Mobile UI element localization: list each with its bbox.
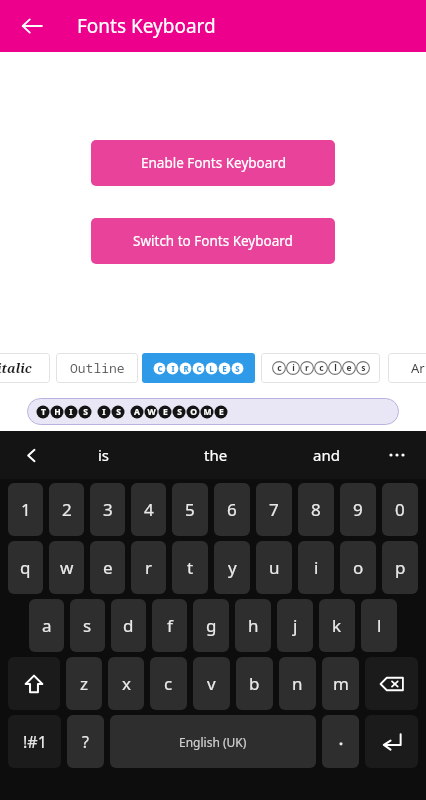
staticText: l [334,362,337,374]
button[interactable]: y [214,541,250,594]
button[interactable]: Backspace [365,657,418,710]
staticText: c [277,362,282,374]
button[interactable]: 3 [90,483,125,536]
button[interactable]: Enable Fonts Keyboard [91,140,335,186]
button[interactable]: s [70,599,105,652]
staticText: l [377,614,382,637]
staticText: b [249,672,260,695]
button[interactable]: f [152,599,187,652]
button[interactable]: d [111,599,146,652]
button[interactable]: is [48,431,160,479]
staticText: E [163,406,168,418]
button[interactable]: z [66,657,102,710]
staticText: g [206,614,217,637]
staticText: y [228,556,237,579]
button[interactable]: g [193,599,229,652]
button[interactable]: italic [0,353,50,383]
button[interactable]: More options [376,434,418,476]
staticText: h [248,614,259,637]
button[interactable]: a [29,599,64,652]
button[interactable]: m [322,657,359,710]
staticText: c [319,362,324,374]
button[interactable]: 7 [256,483,292,536]
button[interactable]: o [340,541,376,594]
button[interactable]: Switch to Fonts Keyboard [91,218,335,264]
staticText: r [305,362,309,374]
button[interactable]: i [298,541,334,594]
staticText: e [103,556,113,579]
button[interactable]: the [160,431,271,479]
button[interactable]: T [27,398,399,425]
button[interactable]: Enter [365,715,418,768]
button[interactable]: Period [322,715,359,768]
staticText: W [147,406,156,418]
button[interactable]: q [8,541,43,594]
button[interactable]: l [361,599,397,652]
staticText: u [269,556,280,579]
staticText: s [361,362,366,374]
staticText: v [207,672,216,695]
staticText: S [235,363,240,374]
button[interactable]: w [49,541,84,594]
staticText: r [145,556,153,579]
button[interactable]: v [193,657,230,710]
button[interactable]: u [256,541,292,594]
button[interactable]: 5 [172,483,208,536]
button[interactable]: ? [67,715,104,768]
staticText: e [346,362,352,374]
button[interactable]: 6 [214,483,250,536]
button[interactable]: 1 [8,483,43,536]
button[interactable]: x [108,657,144,710]
staticText: Switch to Fonts Keyboard [133,232,293,250]
staticText: k [332,614,342,637]
staticText: f [167,614,173,637]
staticText: A [134,406,140,418]
staticText: S [83,406,88,418]
staticText: S [177,406,182,418]
staticText: L [209,363,214,374]
staticText: d [123,614,134,637]
staticText: R [183,363,189,374]
button[interactable]: 8 [298,483,334,536]
button[interactable]: e [90,541,125,594]
button[interactable]: c [150,657,187,710]
button[interactable]: C [142,353,255,383]
staticText: 5 [185,498,195,521]
button[interactable]: t [172,541,208,594]
button[interactable]: j [277,599,313,652]
staticText: 4 [144,498,154,521]
button[interactable]: h [235,599,271,652]
button[interactable]: Previous suggestions [10,434,52,476]
button[interactable]: 9 [340,483,376,536]
staticText: x [122,672,131,695]
button[interactable]: c [261,353,380,383]
button[interactable]: r [131,541,166,594]
staticText: 3 [103,498,113,521]
staticText: O [190,406,197,418]
staticText: c [164,672,173,695]
button[interactable]: b [236,657,273,710]
button[interactable]: 2 [49,483,84,536]
staticText: !#1 [23,731,47,753]
staticText: S [116,406,121,418]
staticText: I [102,406,106,418]
button[interactable]: !#1 [8,715,61,768]
button[interactable]: 4 [131,483,166,536]
button[interactable]: p [382,541,418,594]
staticText: ? [82,731,89,753]
button[interactable]: and [271,431,382,479]
button[interactable]: English (UK) [110,715,316,768]
staticText: p [395,556,406,579]
staticText: w [60,556,74,579]
button[interactable]: Shift [8,657,60,710]
staticText: Fonts Keyboard [77,13,216,39]
staticText: q [20,556,31,579]
button[interactable]: Ar [388,353,426,383]
button[interactable]: Outline [56,353,138,383]
button[interactable]: 0 [382,483,418,536]
staticText: 8 [311,498,321,521]
button[interactable]: k [319,599,355,652]
button[interactable]: n [279,657,316,710]
staticText: i [314,556,319,579]
button[interactable]: Back [10,4,54,48]
